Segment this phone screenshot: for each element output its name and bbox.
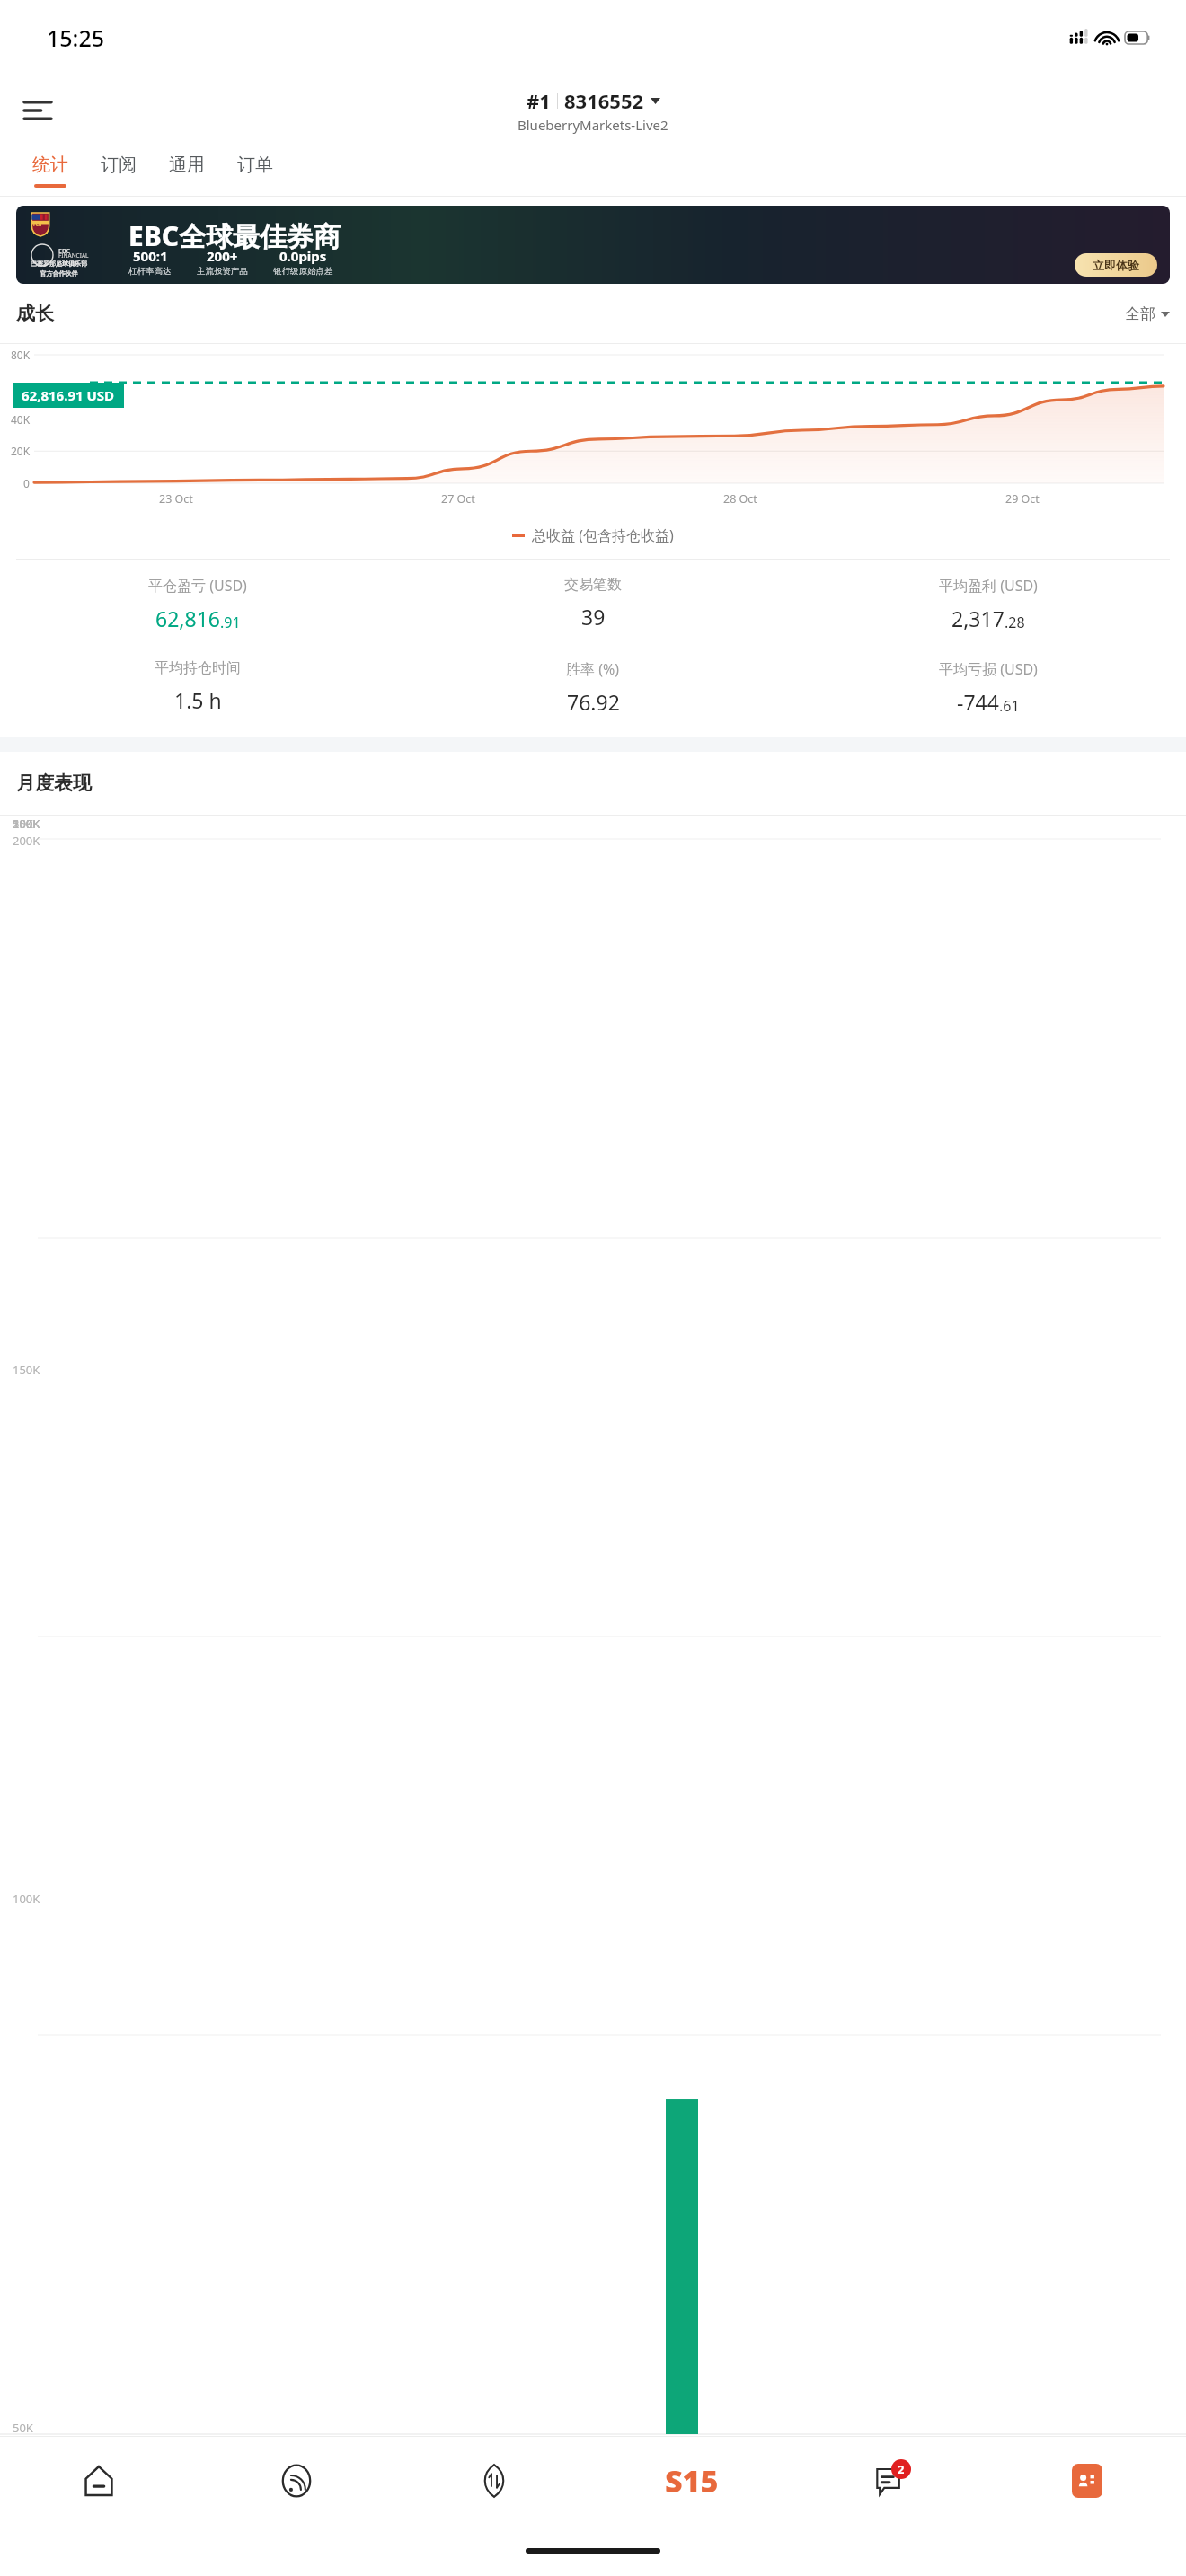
staticText: BlueberryMarkets-Live2 xyxy=(518,116,668,134)
staticText: FCB xyxy=(33,222,42,228)
staticText: 杠杆率高达 xyxy=(128,266,172,277)
staticText: 200K xyxy=(13,816,40,832)
staticText: 立即体验 xyxy=(1093,258,1139,272)
staticText: 20K xyxy=(11,444,31,458)
staticText: 29 Oct xyxy=(1005,491,1040,507)
button[interactable]: Menu xyxy=(13,85,63,136)
button[interactable]: 订单 xyxy=(221,146,289,196)
button[interactable]: 通用 xyxy=(153,146,221,196)
staticText: 150K xyxy=(13,816,40,832)
button[interactable]: Messages xyxy=(791,2436,988,2526)
button[interactable]: 订阅 xyxy=(84,146,153,196)
staticText: .61 xyxy=(999,696,1020,716)
button[interactable]: Profile xyxy=(988,2436,1186,2526)
staticText: 150K xyxy=(13,1362,40,1378)
staticText: 平均盈利 (USD) xyxy=(939,576,1038,595)
staticText: 39 xyxy=(581,603,606,631)
button[interactable]: Home xyxy=(0,2436,198,2526)
staticText: 平仓盈亏 (USD) xyxy=(148,576,247,595)
staticText: S15 xyxy=(665,2460,719,2501)
staticText: #1 xyxy=(527,87,551,114)
staticText: 50K xyxy=(13,816,33,832)
staticText: 成长 xyxy=(16,302,54,325)
staticText: 月度表现 xyxy=(16,772,92,795)
staticText: 2 xyxy=(898,2461,905,2477)
staticText: 500:1 xyxy=(133,247,168,265)
staticText: 2,317 xyxy=(951,604,1005,632)
button[interactable]: Trade xyxy=(395,2436,593,2526)
staticText: 100K xyxy=(13,1891,40,1907)
button[interactable]: 统计 xyxy=(16,146,84,196)
staticText: 订单 xyxy=(237,154,273,176)
staticText: 巴塞罗那足球俱乐部 官方合作伙伴 xyxy=(31,260,87,278)
staticText: .91 xyxy=(220,613,241,632)
staticText: 全部 xyxy=(1125,304,1155,323)
staticText: 0.0pips xyxy=(279,247,327,265)
staticText: 交易笔数 xyxy=(564,576,622,594)
staticText: 统计 xyxy=(32,154,68,176)
staticText: 100K xyxy=(13,816,40,832)
staticText: 62,816 xyxy=(155,604,220,632)
button[interactable]: 全部 xyxy=(1125,304,1170,323)
staticText: 胜率 (%) xyxy=(566,659,620,679)
staticText: 200+ xyxy=(207,247,238,265)
staticText: 23 Oct xyxy=(159,491,193,507)
staticText: 平均亏损 (USD) xyxy=(939,659,1038,679)
staticText: 80K xyxy=(11,348,31,362)
staticText: 通用 xyxy=(169,154,205,176)
staticText: 62,816.91 USD xyxy=(22,386,115,404)
staticText: FINANCIAL GROUP xyxy=(58,251,89,268)
staticText: 1.5 h xyxy=(174,686,222,714)
staticText: .28 xyxy=(1005,613,1025,632)
staticText: 27 Oct xyxy=(441,491,475,507)
staticText: 总收益 (包含持仓收益) xyxy=(532,525,674,545)
button[interactable]: 立即体验 xyxy=(1075,253,1157,277)
staticText: EBC全球最佳券商 xyxy=(128,217,341,254)
staticText: 200K xyxy=(13,833,40,849)
staticText: 15:25 xyxy=(47,22,105,53)
staticText: 8316552 xyxy=(564,87,644,114)
staticText: 28 Oct xyxy=(723,491,757,507)
staticText: 平均持仓时间 xyxy=(155,659,241,677)
staticText: EBC xyxy=(58,247,70,256)
button[interactable]: #1 xyxy=(518,87,668,134)
staticText: 50K xyxy=(13,2420,33,2436)
staticText: 主流投资产品 xyxy=(197,266,248,277)
staticText: 40K xyxy=(11,412,31,427)
button[interactable]: Signals xyxy=(198,2436,395,2526)
staticText: 银行级原始点差 xyxy=(273,266,333,277)
button[interactable]: FCB xyxy=(16,206,1170,284)
button[interactable]: S15 xyxy=(593,2436,791,2526)
staticText: 0 xyxy=(23,476,30,490)
staticText: -744 xyxy=(957,688,999,716)
staticText: 76.92 xyxy=(567,688,620,716)
staticText: 订阅 xyxy=(101,154,137,176)
